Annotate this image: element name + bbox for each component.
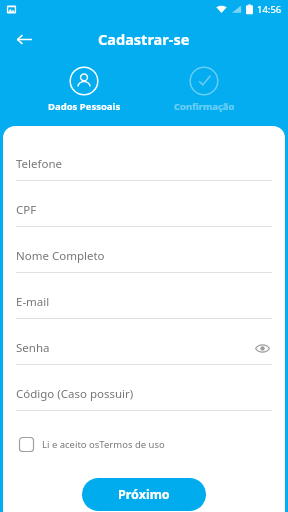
staticText: Próximo	[118, 486, 170, 503]
staticText: Confirmação	[174, 100, 235, 113]
button[interactable]: Dados Pessoais	[24, 60, 144, 113]
staticText: Dados Pessoais	[48, 100, 121, 113]
button[interactable]: E-mail	[16, 286, 272, 332]
button[interactable]: Mostrar senha	[252, 338, 272, 358]
button[interactable]: Código (Caso possuir)	[16, 378, 272, 424]
staticText: Código (Caso possuir)	[16, 386, 134, 402]
button[interactable]: Telefone	[16, 148, 272, 194]
staticText: Cadastrar-se	[98, 29, 190, 49]
staticText: Li e aceito osTermos de uso	[42, 438, 165, 451]
button[interactable]: Li e aceito osTermos de uso	[16, 432, 272, 456]
staticText: E-mail	[16, 294, 50, 310]
button[interactable]: Nome Completo	[16, 240, 272, 286]
staticText: Senha	[16, 340, 50, 356]
button[interactable]: Confirmação	[144, 60, 264, 113]
button[interactable]: Voltar	[8, 23, 40, 55]
button[interactable]: Senha	[16, 332, 272, 378]
staticText: CPF	[16, 202, 37, 218]
staticText: Telefone	[16, 156, 63, 172]
button[interactable]: CPF	[16, 194, 272, 240]
staticText: Nome Completo	[16, 248, 105, 264]
staticText: 14:56	[257, 3, 282, 16]
button[interactable]: Próximo	[82, 478, 206, 511]
